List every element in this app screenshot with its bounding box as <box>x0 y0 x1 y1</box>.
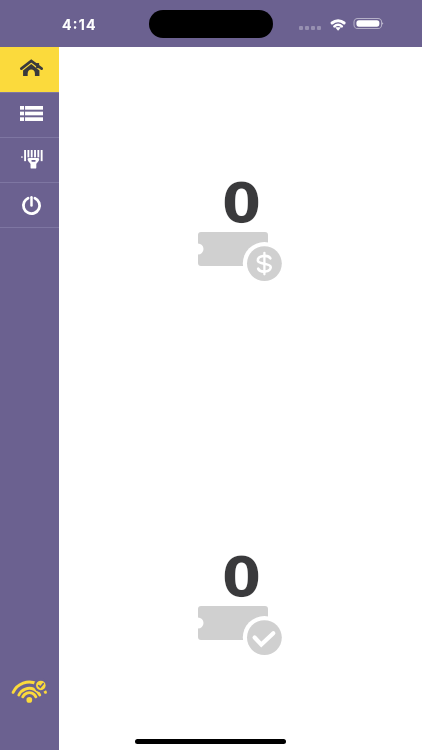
staticText: 0 <box>222 544 261 609</box>
staticText: 0 <box>222 170 261 235</box>
button[interactable]: Power off <box>0 183 59 227</box>
button[interactable]: Connection status <box>0 680 59 750</box>
staticText: 4:14 <box>62 16 97 34</box>
button[interactable]: Home <box>0 47 59 92</box>
button[interactable]: Scan barcode <box>0 138 59 182</box>
button[interactable]: Orders list <box>0 93 59 137</box>
